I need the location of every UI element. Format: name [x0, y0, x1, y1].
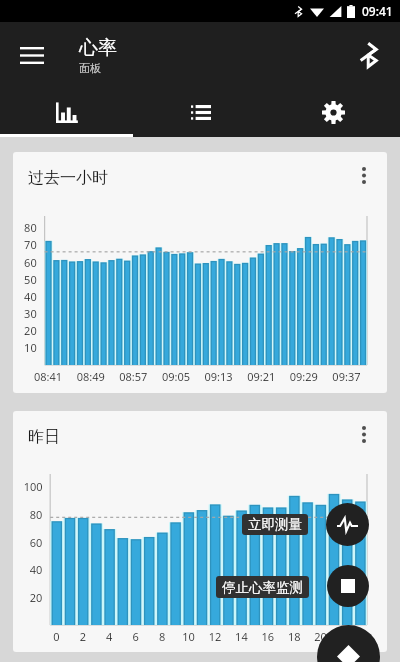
button[interactable]: 立即测量	[242, 514, 308, 535]
button[interactable]: Stop heart rate monitoring	[327, 565, 369, 607]
staticText: 心率	[79, 36, 117, 60]
button[interactable]: 昨日	[13, 411, 387, 652]
staticText: 立即测量	[248, 516, 302, 533]
button[interactable]: Settings tab	[267, 88, 400, 137]
button[interactable]: Close actions menu	[317, 625, 380, 662]
button[interactable]: 停止心率监测	[216, 576, 309, 598]
button[interactable]: List tab	[134, 88, 267, 137]
button[interactable]: More options	[346, 157, 382, 193]
button[interactable]: Bluetooth	[345, 31, 393, 79]
button[interactable]: More options	[346, 416, 382, 452]
staticText: 昨日	[28, 427, 60, 447]
button[interactable]: 过去一小时	[13, 152, 387, 393]
staticText: 停止心率监测	[222, 579, 303, 596]
button[interactable]: Measure now	[326, 503, 369, 546]
staticText: 09:41	[362, 3, 393, 19]
button[interactable]: Charts tab	[0, 88, 134, 137]
staticText: 过去一小时	[28, 168, 108, 188]
button[interactable]: Navigation menu	[8, 31, 56, 79]
staticText: 面板	[79, 61, 101, 75]
